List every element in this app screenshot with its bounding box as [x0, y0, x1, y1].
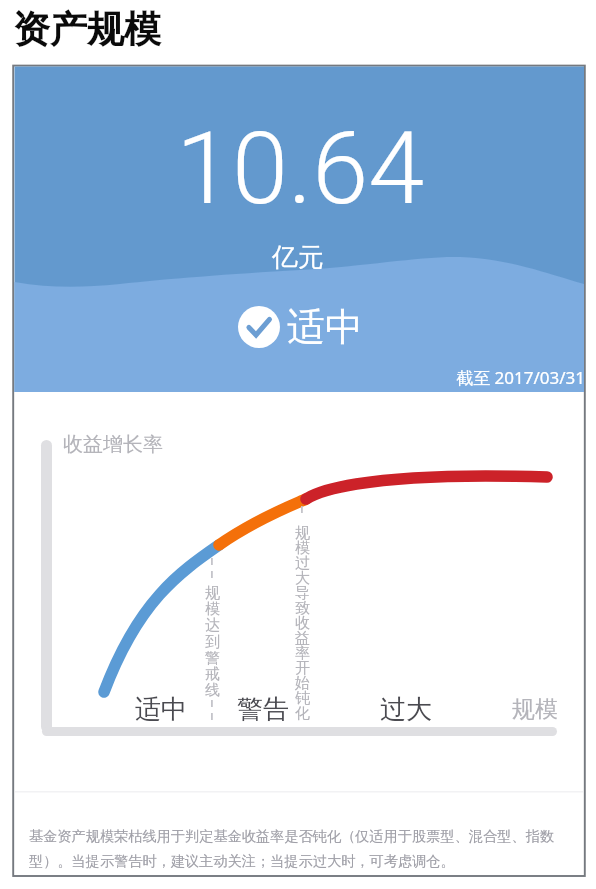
staticText: 化	[295, 704, 310, 723]
staticText: 适中	[135, 693, 187, 726]
staticText: 导	[295, 584, 310, 603]
staticText: 收益增长率	[63, 432, 163, 457]
staticText: 截至 2017/03/31	[380, 366, 585, 389]
staticText: 大	[295, 569, 310, 588]
staticText: 率	[295, 644, 310, 663]
staticText: 戒	[205, 665, 220, 684]
staticText: 警	[205, 649, 220, 668]
staticText: 规	[205, 584, 220, 603]
staticText: 益	[295, 629, 310, 648]
staticText: 10.64	[176, 109, 425, 227]
staticText: 收	[295, 614, 310, 633]
button[interactable]: 资产规模	[13, 6, 161, 53]
staticText: 开	[295, 659, 310, 678]
staticText: 警告	[237, 693, 289, 726]
button[interactable]: 资产规模适中	[238, 303, 363, 351]
staticText: 适中	[287, 303, 363, 351]
staticText: 过	[295, 554, 310, 573]
staticText: 始	[295, 674, 310, 693]
staticText: 致	[295, 599, 310, 618]
button[interactable]: 适中	[135, 693, 187, 726]
staticText: 规	[295, 524, 310, 543]
staticText: 亿元	[272, 241, 324, 274]
button[interactable]: 过大	[380, 693, 432, 726]
staticText: 模	[295, 539, 310, 558]
staticText: 钝	[295, 689, 310, 708]
staticText: 线	[205, 681, 220, 700]
staticText: 到	[205, 633, 220, 652]
staticText: 规模	[512, 695, 558, 724]
button[interactable]: 警告	[237, 693, 289, 726]
staticText: 资产规模	[13, 6, 161, 53]
staticText: 达	[205, 616, 220, 635]
staticText: 过大	[380, 693, 432, 726]
staticText: 模	[205, 600, 220, 619]
staticText: 基金资产规模荣枯线用于判定基金收益率是否钝化（仅适用于股票型、混合型、指数型）。…	[29, 827, 565, 871]
